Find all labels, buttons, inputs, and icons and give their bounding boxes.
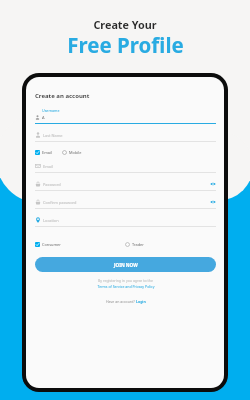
staticText: Create Your — [93, 17, 157, 32]
staticText: By registering in you agree to the — [98, 278, 153, 283]
staticText: Free Profile — [67, 31, 184, 59]
button[interactable]: Login — [136, 299, 146, 304]
button[interactable]: A — [35, 113, 216, 121]
staticText: Location — [43, 218, 59, 223]
button[interactable]: Last Name — [35, 131, 216, 139]
button[interactable]: Mobile — [62, 150, 82, 155]
staticText: Username — [42, 108, 60, 113]
staticText: Password — [43, 182, 61, 187]
button[interactable]: Location — [35, 216, 216, 224]
button[interactable]: Email — [35, 162, 216, 170]
button[interactable]: Trader — [125, 242, 144, 247]
staticText: JOIN NOW — [114, 262, 138, 268]
staticText: Last Name — [43, 133, 63, 138]
staticText: Trader — [132, 242, 144, 247]
button[interactable]: JOIN NOW — [35, 257, 216, 272]
staticText: Email — [42, 150, 52, 155]
button: Create an account — [35, 92, 90, 100]
staticText: Email — [43, 164, 53, 169]
button[interactable]: Show password — [210, 181, 216, 187]
staticText: Have an account? — [106, 299, 136, 304]
staticText: Mobile — [69, 150, 82, 155]
button[interactable]: Show password — [210, 199, 216, 205]
staticText: Consumer — [42, 242, 61, 247]
button[interactable]: Email — [35, 150, 52, 155]
staticText: A — [42, 115, 45, 120]
staticText: Confirm password — [43, 200, 77, 205]
button[interactable]: Consumer — [35, 242, 61, 247]
button[interactable]: Confirm password — [35, 198, 216, 206]
button[interactable]: Password — [35, 180, 216, 188]
button[interactable]: Terms of Service and Privacy Policy — [97, 284, 155, 289]
